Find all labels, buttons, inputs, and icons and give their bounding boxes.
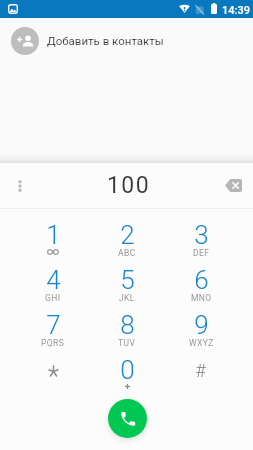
button[interactable]: 4 — [16, 262, 90, 307]
button[interactable]: 3 — [164, 217, 238, 262]
button[interactable]: 9 — [164, 307, 238, 352]
button[interactable]: 2 — [90, 217, 164, 262]
staticText: PQRS — [41, 338, 65, 348]
staticText: 100 — [107, 172, 150, 199]
staticText: 3 — [194, 220, 209, 250]
button[interactable]: # — [164, 352, 238, 397]
button[interactable]: 1 — [16, 217, 90, 262]
button[interactable]: More options — [0, 163, 40, 208]
staticText: 2 — [120, 220, 135, 250]
staticText: 9 — [194, 310, 209, 340]
button[interactable] — [16, 352, 90, 397]
button[interactable]: 6 — [164, 262, 238, 307]
staticText: WXYZ — [189, 338, 214, 348]
button[interactable]: Добавить в контакты — [0, 18, 253, 63]
staticText: 5 — [120, 265, 135, 295]
staticText: # — [195, 360, 206, 381]
button[interactable]: 7 — [16, 307, 90, 352]
staticText: Добавить в контакты — [47, 34, 164, 47]
button[interactable]: Backspace — [213, 163, 253, 208]
staticText: 0 — [120, 355, 135, 385]
staticText: ABC — [118, 248, 136, 258]
staticText: 14:39 — [222, 4, 250, 17]
staticText: TUV — [118, 338, 136, 348]
button[interactable]: Call — [108, 399, 147, 438]
staticText: 7 — [46, 310, 61, 340]
staticText: 8 — [120, 310, 135, 340]
staticText: DEF — [193, 248, 210, 258]
button[interactable]: 0 — [90, 352, 164, 397]
staticText: GHI — [45, 293, 61, 303]
staticText: MNO — [191, 293, 212, 303]
staticText: 4 — [46, 265, 61, 295]
staticText: 6 — [194, 265, 209, 295]
staticText: 1 — [46, 220, 61, 250]
button[interactable]: 5 — [90, 262, 164, 307]
staticText: JKL — [119, 293, 135, 303]
button[interactable]: 8 — [90, 307, 164, 352]
